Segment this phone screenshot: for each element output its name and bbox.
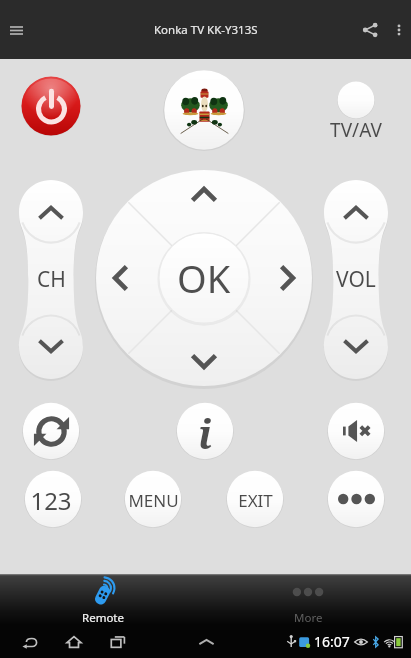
button[interactable]: More [205, 574, 411, 625]
staticText: OK [177, 252, 231, 304]
staticText: i [198, 407, 212, 460]
button[interactable]: More options [387, 7, 411, 53]
button[interactable]: Home [52, 625, 96, 658]
staticText: EXIT [238, 489, 273, 512]
button[interactable]: Power [21, 76, 81, 136]
staticText: More [294, 610, 323, 626]
button[interactable]: Menu [124, 470, 182, 528]
staticText: Konka TV KK-Y313S [154, 22, 258, 38]
button[interactable]: Navigation menu [0, 7, 32, 53]
button[interactable]: Refresh [22, 402, 80, 460]
staticText: MENU [128, 489, 179, 512]
staticText: CH [37, 265, 66, 294]
button[interactable]: Exit [226, 470, 284, 528]
button[interactable]: Number pad [24, 470, 82, 528]
button[interactable]: Info [176, 402, 234, 460]
staticText: TV/AV [330, 117, 382, 143]
button[interactable]: Share [353, 7, 387, 53]
button[interactable]: Source logo [163, 69, 245, 151]
staticText: 16:07 [314, 632, 350, 651]
button[interactable]: TV/AV [337, 81, 375, 119]
button[interactable]: Back [8, 625, 52, 658]
staticText: VOL [336, 265, 376, 294]
button[interactable]: Remote [0, 574, 206, 625]
button[interactable]: Recent apps [96, 625, 140, 658]
button[interactable]: More buttons [327, 470, 385, 528]
staticText: Remote [82, 610, 124, 626]
staticText: 123 [30, 484, 72, 512]
button[interactable]: Expand [188, 625, 224, 658]
button[interactable]: Mute [327, 402, 385, 460]
